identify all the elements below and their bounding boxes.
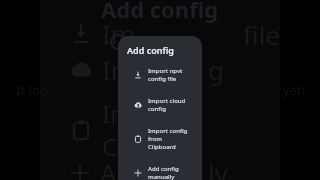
staticText: ; yet! bbox=[276, 81, 306, 99]
staticText: Ad bbox=[100, 155, 133, 180]
staticText: Add config manually bbox=[148, 165, 188, 180]
button[interactable]: Add config manually bbox=[126, 161, 196, 180]
button[interactable]: Import npvt config file bbox=[126, 63, 196, 87]
staticText: file bbox=[243, 17, 281, 52]
staticText: Import config from bbox=[148, 127, 188, 143]
staticText: g bbox=[208, 52, 224, 87]
button[interactable]: Import config from bbox=[126, 123, 196, 155]
staticText: Im bbox=[102, 52, 136, 87]
staticText: Clipboard bbox=[148, 143, 176, 151]
staticText: ly bbox=[208, 155, 228, 180]
staticText: Cli bbox=[102, 130, 130, 163]
staticText: It loo bbox=[16, 81, 48, 99]
staticText: Add config bbox=[101, 0, 219, 24]
staticText: Im bbox=[102, 97, 133, 130]
staticText: Import cloud config bbox=[148, 97, 188, 113]
button[interactable]: Import cloud config bbox=[126, 93, 196, 117]
staticText: Add config bbox=[127, 44, 174, 56]
staticText: Import npvt config file bbox=[148, 67, 188, 83]
staticText: Im bbox=[102, 16, 136, 51]
